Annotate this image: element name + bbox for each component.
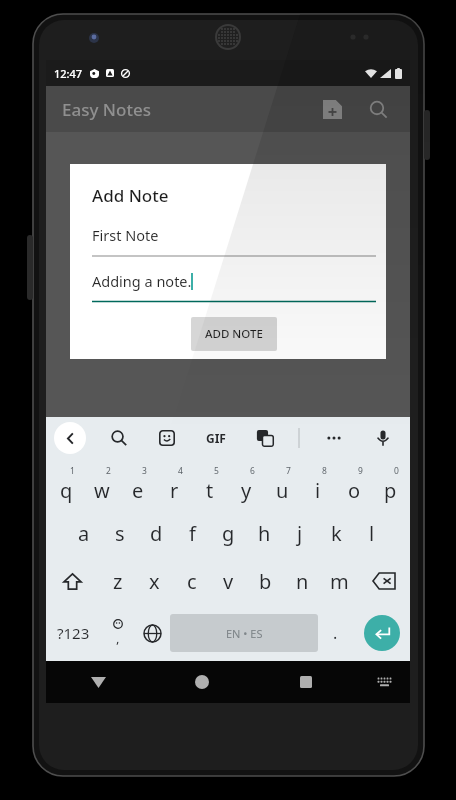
- staticText: j: [297, 520, 303, 547]
- staticText: a: [78, 520, 90, 547]
- button[interactable]: 6: [228, 459, 264, 509]
- button[interactable]: Back: [54, 422, 86, 454]
- button[interactable]: x: [136, 557, 173, 605]
- button[interactable]: g: [210, 509, 246, 557]
- button[interactable]: 1: [48, 459, 84, 509]
- staticText: First Note: [92, 225, 159, 245]
- staticText: 6: [250, 465, 255, 477]
- button[interactable]: s: [102, 509, 138, 557]
- button[interactable]: k: [318, 509, 354, 557]
- staticText: Add Note: [92, 184, 169, 207]
- button[interactable]: 7: [264, 459, 300, 509]
- staticText: g: [222, 520, 235, 547]
- button[interactable]: f: [174, 509, 210, 557]
- staticText: u: [276, 477, 289, 504]
- button[interactable]: Translate: [250, 423, 280, 453]
- staticText: l: [369, 520, 375, 547]
- button[interactable]: Search: [358, 89, 398, 129]
- staticText: h: [258, 520, 271, 547]
- staticText: f: [189, 520, 196, 547]
- staticText: i: [315, 477, 321, 504]
- staticText: r: [170, 477, 179, 504]
- staticText: 8: [322, 465, 327, 477]
- button[interactable]: c: [173, 557, 210, 605]
- button[interactable]: More options: [319, 423, 349, 453]
- button[interactable]: Stickers: [152, 423, 182, 453]
- button[interactable]: m: [321, 557, 358, 605]
- button[interactable]: b: [247, 557, 284, 605]
- staticText: ,: [116, 629, 120, 647]
- button[interactable]: GIF: [201, 423, 231, 453]
- button[interactable]: EN • ES: [170, 614, 318, 652]
- staticText: k: [331, 520, 342, 547]
- button[interactable]: Emoji: [100, 605, 135, 661]
- staticText: ?123: [57, 623, 90, 643]
- staticText: 9: [358, 465, 363, 477]
- button[interactable]: ADD NOTE: [191, 317, 277, 351]
- staticText: n: [296, 568, 309, 595]
- staticText: GIF: [206, 430, 226, 446]
- staticText: e: [132, 477, 144, 504]
- staticText: c: [187, 568, 197, 595]
- button[interactable]: h: [246, 509, 282, 557]
- button[interactable]: Recents: [254, 661, 358, 703]
- staticText: EN • ES: [226, 626, 263, 641]
- staticText: ADD NOTE: [205, 326, 263, 342]
- button[interactable]: a: [66, 509, 102, 557]
- button[interactable]: Switch keyboard: [358, 661, 410, 703]
- button[interactable]: Search: [104, 423, 134, 453]
- button[interactable]: ?123: [46, 605, 100, 661]
- button[interactable]: 4: [156, 459, 192, 509]
- staticText: p: [384, 477, 397, 504]
- staticText: Easy Notes: [62, 98, 151, 121]
- staticText: .: [333, 622, 338, 644]
- staticText: 12:47: [54, 66, 83, 81]
- staticText: v: [223, 568, 234, 595]
- button[interactable]: Enter: [353, 605, 410, 661]
- staticText: 0: [394, 465, 399, 477]
- staticText: 1: [70, 465, 75, 477]
- button[interactable]: 9: [336, 459, 372, 509]
- button[interactable]: v: [210, 557, 247, 605]
- button[interactable]: Back: [46, 661, 150, 703]
- staticText: 3: [142, 465, 147, 477]
- button[interactable]: j: [282, 509, 318, 557]
- staticText: 2: [106, 465, 111, 477]
- button[interactable]: Change language: [135, 605, 170, 661]
- button[interactable]: Adding a note.: [92, 271, 376, 303]
- staticText: w: [94, 477, 110, 504]
- button[interactable]: Home: [150, 661, 254, 703]
- button[interactable]: Shift: [46, 557, 99, 605]
- staticText: q: [60, 477, 73, 504]
- button[interactable]: 5: [192, 459, 228, 509]
- staticText: 4: [178, 465, 183, 477]
- staticText: b: [259, 568, 272, 595]
- button[interactable]: l: [354, 509, 390, 557]
- staticText: x: [149, 568, 160, 595]
- staticText: 5: [214, 465, 219, 477]
- staticText: m: [330, 568, 349, 595]
- button[interactable]: Backspace: [358, 557, 410, 605]
- staticText: t: [206, 477, 214, 504]
- button[interactable]: .: [318, 605, 353, 661]
- staticText: Adding a note.: [92, 271, 192, 291]
- button[interactable]: 8: [300, 459, 336, 509]
- button[interactable]: d: [138, 509, 174, 557]
- staticText: d: [150, 520, 163, 547]
- button[interactable]: 3: [120, 459, 156, 509]
- button[interactable]: First Note: [92, 225, 376, 257]
- staticText: z: [113, 568, 123, 595]
- button[interactable]: Voice input: [368, 423, 398, 453]
- staticText: o: [348, 477, 361, 504]
- button[interactable]: Add note: [312, 89, 352, 129]
- staticText: y: [241, 477, 252, 504]
- staticText: s: [115, 520, 125, 547]
- staticText: 7: [286, 465, 291, 477]
- button[interactable]: n: [284, 557, 321, 605]
- button[interactable]: z: [99, 557, 136, 605]
- button[interactable]: 2: [84, 459, 120, 509]
- button[interactable]: 0: [372, 459, 408, 509]
